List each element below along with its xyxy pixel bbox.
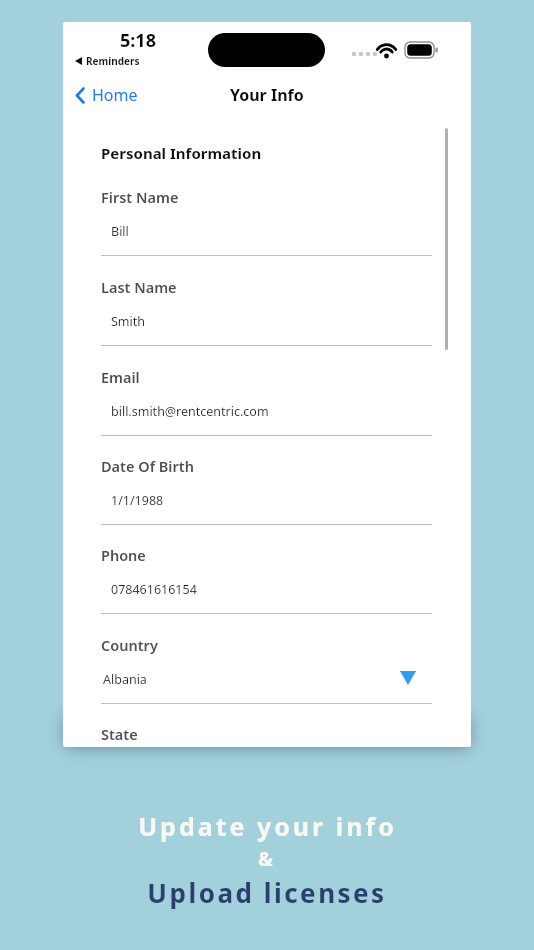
staticText: Country [101,635,158,655]
staticText: Email [101,367,140,387]
staticText: Reminders [86,54,140,68]
staticText: Upload licenses [147,875,387,910]
staticText: First Name [101,187,179,207]
staticText: Albania [103,671,147,688]
staticText: 1/1/1988 [111,492,164,509]
staticText: State [101,724,138,744]
staticText: Update your info [138,809,397,843]
staticText: Phone [101,545,146,565]
staticText: bill.smith@rentcentric.com [111,403,269,420]
staticText: Date Of Birth [101,456,194,476]
staticText: Personal Information [101,143,262,163]
staticText: 078461616154 [111,581,197,598]
staticText: 5:18 [120,28,156,53]
staticText: Last Name [101,277,177,297]
staticText: Home [92,84,138,106]
button[interactable] [400,671,416,685]
staticText: Your Info [230,84,304,106]
staticText: & [258,845,277,872]
button[interactable]: Home [75,84,138,106]
staticText: Bill [111,223,129,240]
staticText: Smith [111,313,146,330]
